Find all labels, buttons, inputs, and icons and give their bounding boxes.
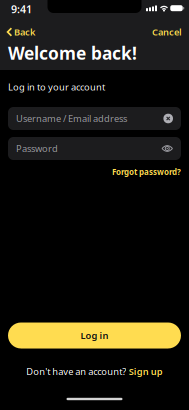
staticText: 9:41 [11, 2, 32, 16]
staticText: Username / Email address [16, 112, 127, 125]
staticText: Sign up [129, 365, 163, 378]
staticText: Log in [80, 329, 108, 342]
staticText: Forgot password? [112, 167, 181, 177]
staticText: Don't have an account? [26, 365, 126, 378]
staticText: Password [16, 142, 58, 155]
staticText: Back [14, 26, 35, 38]
staticText: Welcome back! [8, 41, 137, 64]
staticText: Cancel [152, 26, 182, 38]
staticText: Log in to your account [8, 81, 105, 93]
